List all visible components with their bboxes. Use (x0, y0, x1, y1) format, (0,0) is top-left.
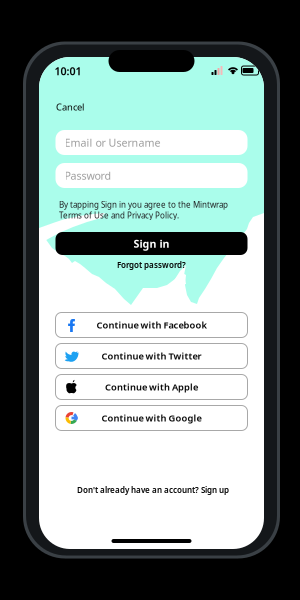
staticText: Continue with Apple (105, 381, 198, 393)
button[interactable]: Continue with Google (55, 405, 247, 430)
staticText: By tapping Sign in you agree to the Mint… (59, 199, 228, 221)
staticText: Sign in (133, 236, 169, 251)
staticText: Don't already have an account? Sign up (77, 485, 229, 495)
staticText: 10:01 (54, 64, 81, 78)
button[interactable]: Continue with Facebook (55, 312, 247, 337)
button[interactable]: Continue with Twitter (55, 343, 247, 368)
button[interactable]: Forgot password? (111, 259, 191, 271)
button[interactable]: Cancel (56, 100, 96, 114)
staticText: Cancel (56, 101, 84, 113)
staticText: Continue with Twitter (101, 350, 201, 362)
button[interactable]: Don't already have an account? Sign up (68, 483, 238, 497)
staticText: Continue with Google (101, 412, 201, 424)
button[interactable]: Continue with Apple (55, 374, 247, 399)
staticText: Forgot password? (117, 260, 186, 270)
staticText: Email or Username (64, 135, 160, 150)
staticText: Password (64, 168, 111, 183)
button[interactable]: Sign in (55, 232, 247, 255)
staticText: Continue with Facebook (96, 319, 206, 331)
